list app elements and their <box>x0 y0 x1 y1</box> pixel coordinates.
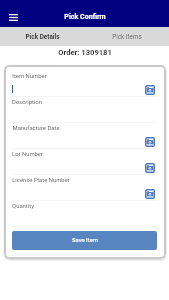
staticText: Item Number <box>12 73 47 80</box>
button[interactable]: Scan License Plate Number with camera <box>145 189 155 199</box>
staticText: Description <box>12 99 42 106</box>
button[interactable]: Scan Manufacture Date with camera <box>145 137 155 147</box>
button[interactable]: Scan Lot Number with camera <box>145 163 155 173</box>
staticText: Save Item <box>72 237 98 244</box>
staticText: Pick Details <box>25 33 60 41</box>
staticText: License Plate Number <box>12 177 70 184</box>
staticText: Order: 1309181 <box>58 48 112 57</box>
staticText: Lot Number <box>12 151 43 158</box>
staticText: Manufacture Date <box>12 125 60 132</box>
button[interactable]: Scan Item Number with camera <box>145 85 155 95</box>
button[interactable]: Open navigation menu <box>4 10 22 24</box>
button[interactable]: Pick Details <box>0 27 84 46</box>
button[interactable]: Pick Items <box>84 27 169 46</box>
button[interactable]: Save Item <box>12 231 157 250</box>
staticText: Pick Items <box>112 33 142 40</box>
staticText: Quantity <box>12 203 34 210</box>
staticText: Pick Confirm <box>64 12 106 20</box>
